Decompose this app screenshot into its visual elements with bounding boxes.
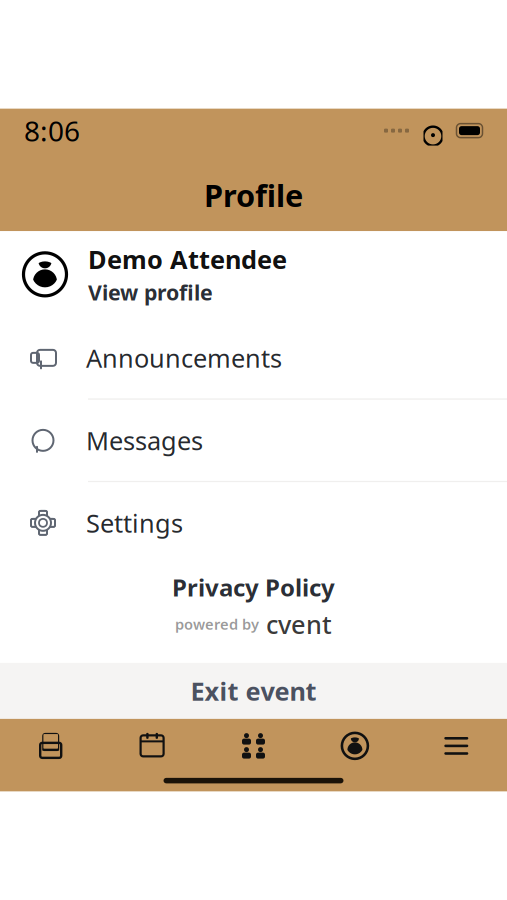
staticText: 8:06	[24, 112, 80, 149]
staticText: View profile	[88, 278, 213, 306]
button[interactable]: Profile	[304, 731, 406, 761]
button[interactable]: More	[406, 732, 507, 760]
staticText: powered by	[175, 614, 259, 634]
button[interactable]: Schedule	[101, 731, 203, 761]
staticText: Announcements	[86, 341, 282, 375]
button[interactable]: Exit event	[0, 663, 507, 719]
button[interactable]: Demo Attendee	[0, 231, 507, 317]
staticText: Demo Attendee	[88, 242, 287, 276]
button[interactable]: Attendees	[203, 732, 304, 760]
staticText: Privacy Policy	[172, 571, 335, 603]
button[interactable]: Privacy Policy	[172, 571, 335, 603]
staticText: Exit event	[190, 674, 316, 708]
staticText: Settings	[86, 506, 183, 540]
staticText: Messages	[86, 423, 203, 457]
button[interactable]: Settings	[0, 482, 507, 563]
button[interactable]: Messages	[0, 400, 507, 481]
staticText: Profile	[204, 175, 303, 215]
button[interactable]: Announcements	[0, 317, 507, 398]
staticText: cvent	[266, 607, 332, 641]
button[interactable]: Home	[0, 732, 101, 760]
